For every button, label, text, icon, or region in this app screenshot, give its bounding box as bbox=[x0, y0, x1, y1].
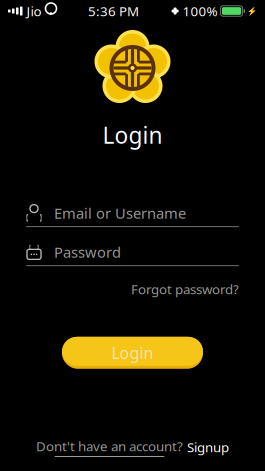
button[interactable]: Forgot password? bbox=[131, 277, 239, 301]
staticText: 100% bbox=[183, 2, 218, 20]
staticText: ⚡ bbox=[247, 6, 257, 15]
staticText: Password bbox=[54, 242, 121, 262]
button[interactable]: Login bbox=[62, 337, 203, 369]
staticText: Email or Username bbox=[54, 203, 186, 223]
staticText: Dont't have an account? bbox=[36, 437, 183, 455]
staticText: Login bbox=[111, 342, 153, 363]
button[interactable]: Dont't have an account? bbox=[36, 433, 229, 461]
staticText: 5:36 PM bbox=[88, 2, 139, 20]
staticText: Jio bbox=[26, 2, 41, 20]
button[interactable]: Email or Username bbox=[0, 200, 265, 227]
staticText: Login bbox=[102, 120, 162, 150]
staticText: Signup bbox=[187, 438, 229, 456]
staticText: Forgot password? bbox=[131, 280, 239, 298]
button[interactable]: Password bbox=[0, 239, 265, 266]
